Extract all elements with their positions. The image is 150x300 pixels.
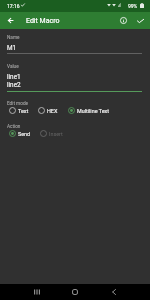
staticText: Send (18, 131, 31, 137)
staticText: HEX (47, 108, 58, 114)
staticText: Name (7, 35, 20, 41)
button[interactable]: M1 (7, 44, 17, 52)
button[interactable]: Home (60, 284, 90, 300)
staticText: Action (7, 124, 21, 130)
button[interactable]: Back (99, 284, 129, 300)
button[interactable]: Send (6, 128, 37, 139)
staticText: Insert (49, 131, 63, 137)
staticText: line1 (7, 73, 21, 81)
button[interactable]: Edit mode (7, 101, 29, 107)
button[interactable]: Multiline Text (65, 105, 110, 116)
button[interactable]: Action (7, 124, 21, 130)
staticText: M1 (7, 44, 17, 52)
button[interactable]: Name (7, 35, 20, 41)
button[interactable]: Info (115, 12, 131, 29)
staticText: line2 (7, 81, 21, 89)
staticText: Edit Macro (26, 17, 60, 25)
button[interactable]: Insert (37, 128, 63, 139)
staticText: 17:16 (7, 3, 20, 9)
staticText: Value (7, 64, 19, 70)
staticText: Multiline Text (77, 108, 110, 114)
button[interactable]: line1 (7, 73, 21, 81)
button[interactable]: Recent apps (22, 284, 52, 300)
button[interactable]: Navigate up (2, 12, 18, 28)
button[interactable]: Save (132, 12, 149, 29)
staticText: 99% (128, 3, 138, 9)
button[interactable]: Value (7, 64, 19, 70)
button[interactable]: Text (6, 105, 35, 116)
staticText: Text (18, 108, 29, 114)
staticText: Edit mode (7, 101, 29, 107)
button[interactable]: HEX (35, 105, 65, 116)
